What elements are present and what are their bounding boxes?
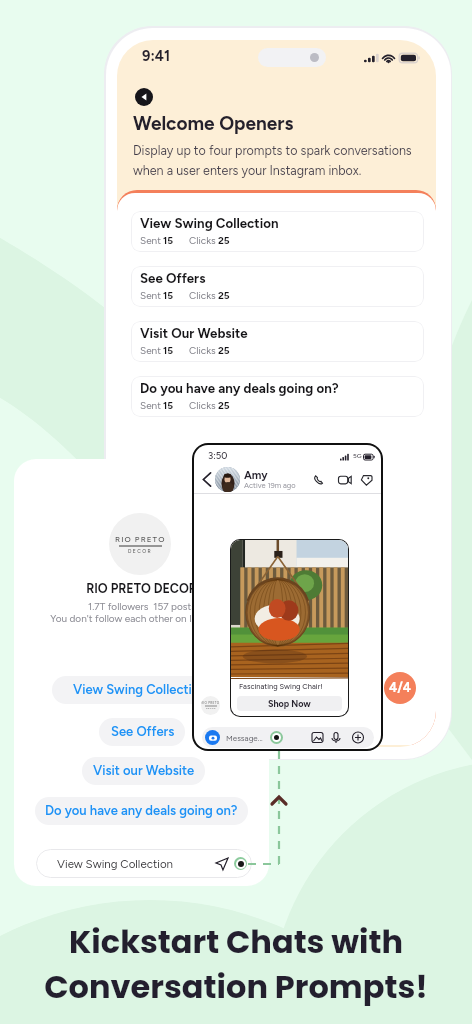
staticText: View Swing Collection [140,215,279,231]
staticText: You don't follow each other on Instagram [50,612,234,624]
staticText: Do you have any deals going on? [45,803,238,819]
staticText: 25 [218,399,230,411]
staticText: RIO PRETO [115,534,166,544]
staticText: 15 [163,344,174,356]
staticText: 15 [163,289,174,301]
staticText: DECOR [128,548,153,554]
button[interactable]: View Swing Collection [36,849,252,878]
button[interactable]: See Offers [99,718,185,746]
staticText: 15 [163,399,174,411]
staticText: 4/4 [389,680,412,696]
staticText: Welcome Openers [133,112,294,135]
staticText: 25 [218,234,230,246]
staticText: Fascinating Swing Chair! [239,682,323,691]
staticText: 9:41 [142,47,171,64]
button[interactable]: Visit Our Website [131,321,424,362]
button[interactable]: Shop Now [237,696,342,711]
button[interactable]: Message... [202,727,374,748]
staticText: Sent [140,234,161,246]
staticText: Kickstart Chats with [69,919,403,964]
staticText: 5G [353,452,362,460]
button[interactable]: Do you have any deals going on? [131,376,424,417]
staticText: Clicks [189,399,216,411]
staticText: Clicks [189,289,216,301]
button[interactable]: View Swing Collection [131,211,424,252]
staticText: RIO PRETO [201,701,220,705]
staticText: 25 [218,344,230,356]
staticText: Shop Now [268,698,311,709]
staticText: View Swing Collection [57,857,173,871]
staticText: See Offers [111,724,175,740]
staticText: DECOR [206,707,216,710]
button[interactable]: View Swing Collection [52,676,217,704]
staticText: Visit Our Website [140,325,248,341]
staticText: Display up to four prompts to spark conv… [133,143,412,178]
button[interactable]: Visit our Website [82,757,205,785]
staticText: 25 [218,289,230,301]
button[interactable]: Back [135,88,153,106]
staticText: 1.7T followers 157 posts [88,600,196,612]
staticText: Visit our Website [93,763,195,779]
staticText: Do you have any deals going on? [140,380,339,396]
staticText: Conversation Prompts! [44,964,428,1009]
staticText: Clicks [189,344,216,356]
button[interactable]: Do you have any deals going on? [35,797,248,825]
staticText: Amy [244,469,268,482]
staticText: Active 19m ago [244,481,296,490]
button[interactable]: See Offers [131,266,424,307]
staticText: View Swing Collection [73,682,207,698]
staticText: 15 [163,234,174,246]
staticText: Clicks [189,234,216,246]
staticText: See Offers [140,270,206,286]
staticText: Sent [140,399,161,411]
staticText: RIO PRETO DECOR [86,581,197,596]
staticText: Sent [140,344,161,356]
staticText: 3:50 [208,450,228,461]
staticText: Sent [140,289,161,301]
staticText: Message... [226,733,263,743]
